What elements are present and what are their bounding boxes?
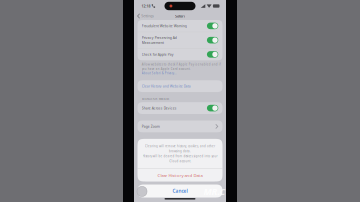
staticText: Privacy Preserving Ad [142, 35, 177, 40]
button[interactable]: Settings [134, 12, 154, 20]
staticText: Allow websites to check if Apple Pay is … [142, 63, 221, 66]
staticText: you have an Apple Card account. [142, 67, 191, 71]
button[interactable]: Clear History and Data [137, 169, 222, 181]
staticText: MR.C [203, 185, 225, 198]
staticText: About Safari & Privacy... [142, 71, 177, 75]
button[interactable]: Clear History and Website Data [137, 80, 222, 92]
staticText: Check for Apple Pay [142, 52, 174, 57]
button[interactable]: About Safari & Privacy... [142, 71, 177, 75]
button[interactable]: Page Zoom [137, 120, 222, 132]
staticText: History will be cleared from devices sig… [142, 154, 217, 158]
button[interactable]: Privacy Preserving Ad [137, 32, 222, 48]
staticText: browsing data. [169, 149, 191, 153]
staticText: Share Across Devices [142, 106, 177, 110]
staticText: Safari [175, 13, 185, 19]
button[interactable]: Check for Apple Pay [137, 48, 222, 60]
staticText: Clear History and Website Data [142, 84, 191, 88]
button[interactable]: Cancel [137, 184, 222, 197]
staticText: Clearing will remove history, cookies, a… [145, 144, 215, 148]
staticText: 12:18 [141, 3, 150, 8]
staticText: Clear History and Data [157, 172, 202, 178]
button[interactable]: Fraudulent Website Warning [137, 20, 222, 32]
staticText: SETTINGS FOR WEBSITES [142, 97, 169, 101]
staticText: Settings [141, 14, 154, 18]
staticText: Page Zoom [142, 124, 160, 129]
staticText: Fraudulent Website Warning [142, 24, 187, 28]
staticText: Measurement [142, 40, 164, 45]
staticText: Cancel [172, 188, 187, 194]
staticText: iCloud account. [168, 159, 191, 163]
button[interactable]: Share Across Devices [137, 102, 222, 114]
